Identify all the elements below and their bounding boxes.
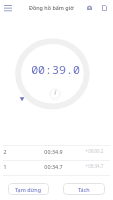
staticText: 00:39.0 — [20, 62, 91, 78]
staticText: 1 — [0, 163, 10, 170]
button[interactable]: 2 — [0, 146, 113, 160]
button[interactable]: 1 — [0, 161, 113, 175]
button[interactable]: Open documents — [97, 0, 112, 15]
staticText: Tách — [78, 186, 90, 193]
staticText: +00:00.2 — [78, 148, 111, 154]
staticText: Đồng hồ bấm giờ — [29, 4, 74, 11]
staticText: +00:34.7 — [78, 163, 111, 169]
button[interactable]: Tạm dừng — [8, 183, 49, 195]
staticText: 00:34.9 — [33, 148, 74, 155]
staticText: Tạm dừng — [15, 186, 42, 193]
button[interactable]: Tách — [63, 183, 105, 195]
button[interactable]: Bedtime — [82, 0, 97, 15]
button[interactable]: Open navigation menu — [0, 0, 15, 15]
staticText: 2 — [0, 148, 10, 155]
staticText: 00:34.7 — [33, 163, 74, 170]
